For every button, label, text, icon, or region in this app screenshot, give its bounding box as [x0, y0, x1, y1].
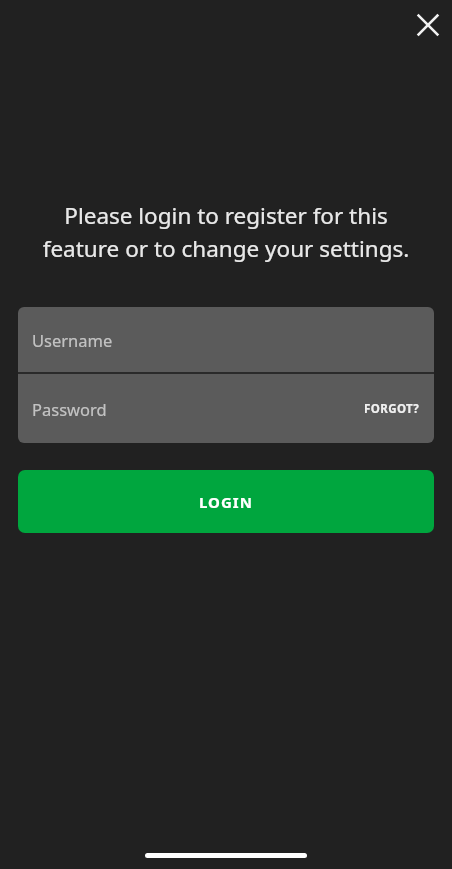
staticText: FORGOT?	[364, 401, 420, 417]
staticText: Please login to register for this featur…	[18, 200, 434, 263]
button[interactable]: LOGIN	[18, 470, 434, 533]
staticText: LOGIN	[199, 492, 253, 512]
button[interactable]: FORGOT?	[364, 401, 420, 417]
staticText: Password	[32, 398, 107, 420]
button[interactable]: Close	[404, 1, 451, 48]
button[interactable]: Username	[18, 307, 434, 372]
staticText: Username	[32, 329, 113, 351]
button[interactable]: Password	[18, 374, 434, 443]
